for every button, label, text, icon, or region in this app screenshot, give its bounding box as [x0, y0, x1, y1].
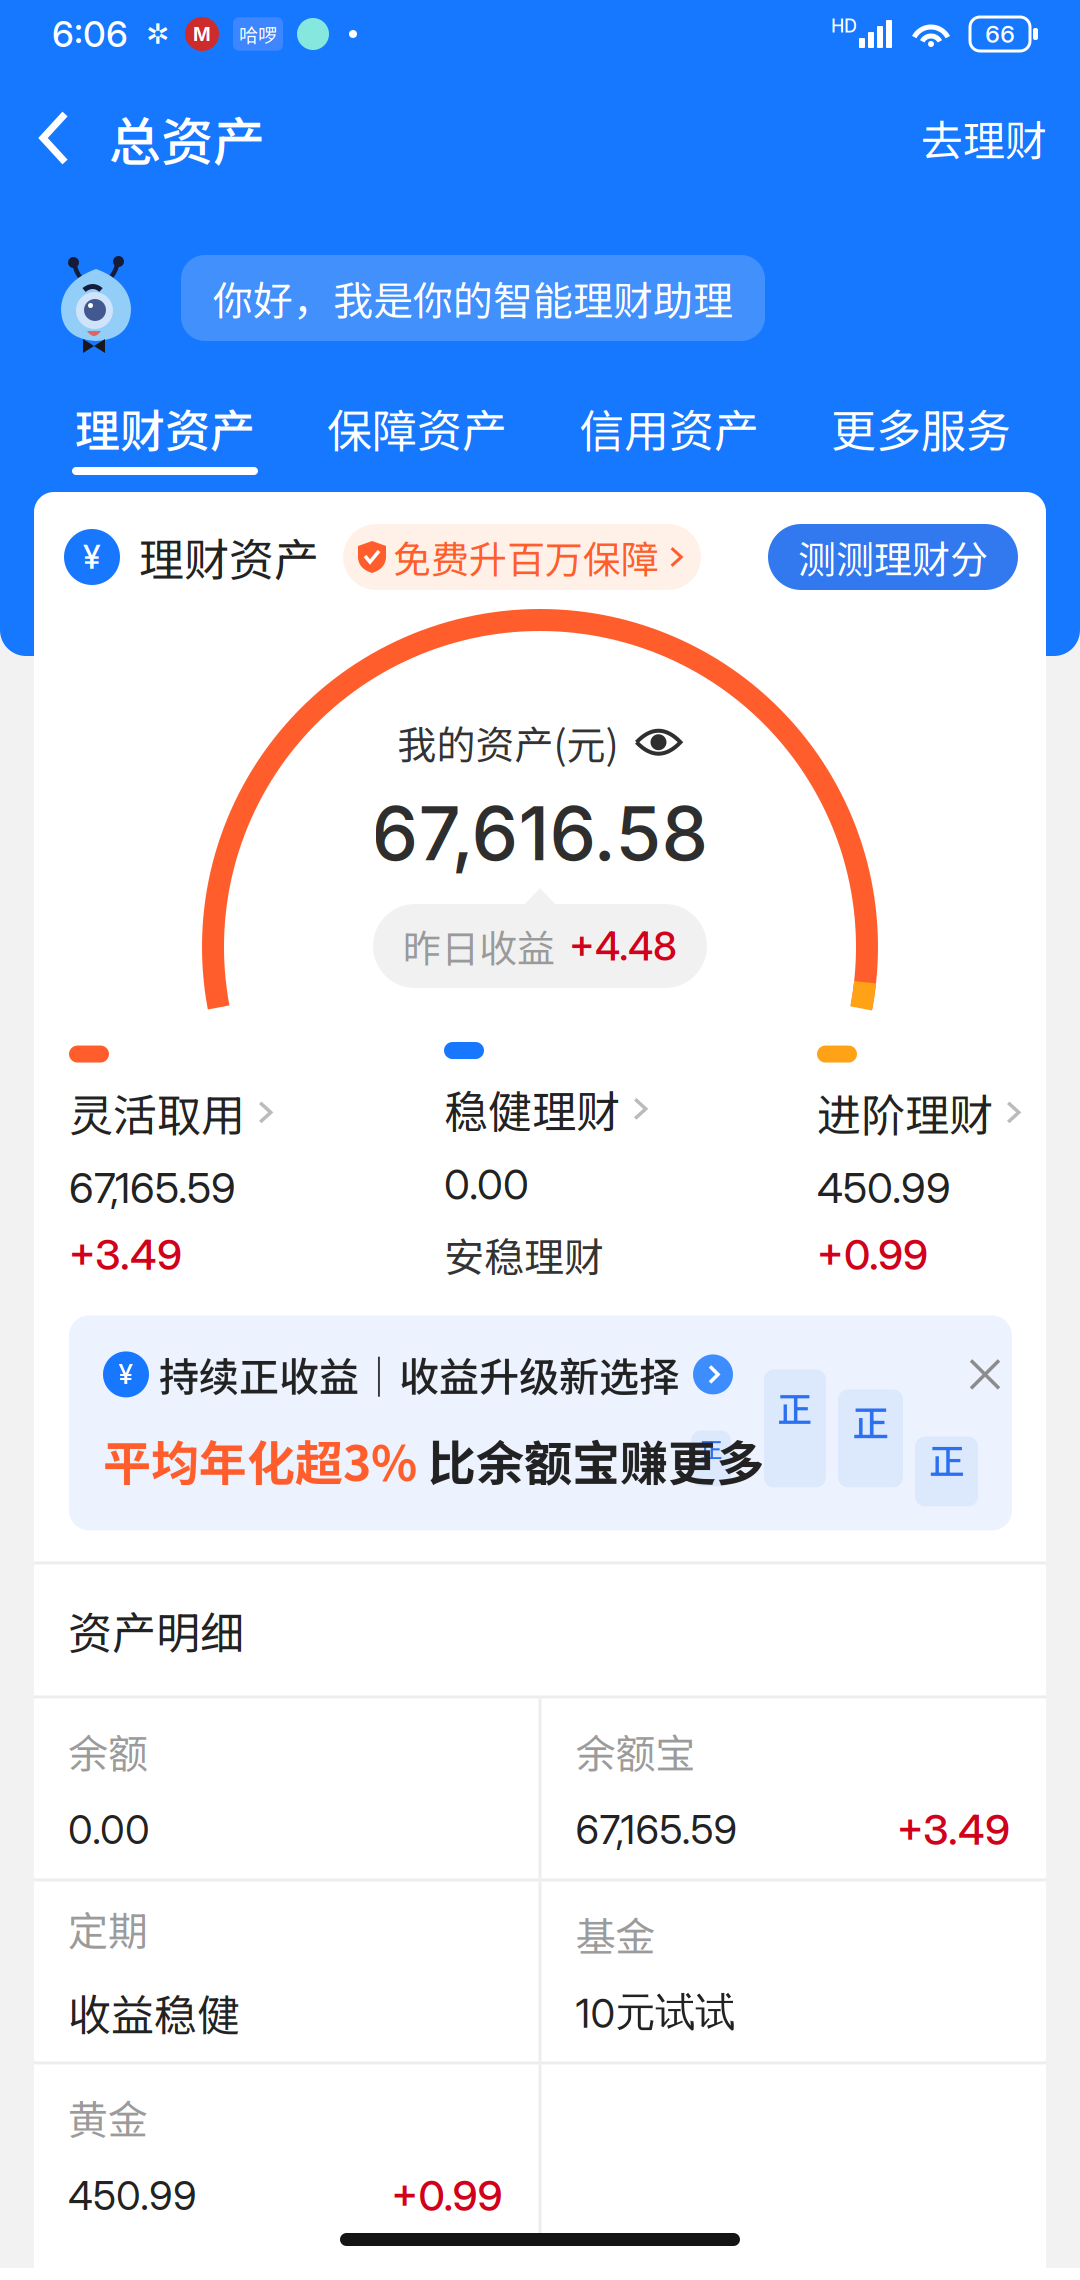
staticText: 持续正收益｜收益升级新选择	[159, 1345, 679, 1403]
staticText: 正	[852, 1394, 888, 1447]
button[interactable]: 余额	[34, 1698, 538, 1878]
staticText: 67,165.59	[69, 1162, 236, 1213]
staticText: 450.99	[817, 1162, 951, 1213]
staticText: 余额宝	[575, 1722, 695, 1780]
staticText: 定期	[68, 1899, 148, 1957]
button[interactable]: 黄金	[34, 2064, 538, 2244]
staticText: 总资产	[109, 100, 265, 176]
staticText: 昨日收益	[403, 918, 555, 973]
staticText: 余额	[68, 1722, 148, 1780]
staticText: 我的资产(元)	[397, 714, 618, 770]
button[interactable]: 保障资产	[291, 357, 543, 492]
button[interactable]: 理财资产	[39, 357, 291, 492]
button[interactable]: 免费升百万保障	[343, 524, 701, 590]
staticText: 66	[985, 19, 1015, 48]
button[interactable]: 稳健理财	[444, 1042, 817, 1283]
staticText: 正	[929, 1433, 964, 1484]
staticText: 理财资产	[139, 524, 319, 590]
staticText: +0.99	[817, 1229, 928, 1280]
staticText: 你好，我是你的智能理财助理	[213, 269, 733, 327]
button[interactable]: 进阶理财	[817, 1046, 1046, 1280]
staticText: 67,165.59	[575, 1805, 737, 1854]
staticText: 10元试试	[575, 1987, 735, 2038]
staticText: 稳健理财	[444, 1077, 620, 1141]
staticText: 哈啰	[239, 20, 277, 48]
staticText: 比余额宝赚更多	[417, 1425, 764, 1495]
button[interactable]: 灵活取用	[69, 1046, 444, 1280]
button[interactable]: 更多服务	[795, 357, 1047, 492]
staticText: 灵活取用	[69, 1081, 245, 1144]
staticText: +0.99	[391, 2170, 502, 2221]
staticText: 进阶理财	[817, 1081, 993, 1144]
staticText: +3.49	[897, 1804, 1010, 1855]
button[interactable]: 正	[34, 1283, 1046, 1561]
button[interactable]: 智能理财助理	[53, 196, 139, 357]
staticText: 0.00	[444, 1159, 529, 1209]
staticText: 信用资产	[579, 395, 759, 461]
staticText: 450.99	[68, 2171, 197, 2220]
staticText: ¥	[118, 1358, 133, 1391]
staticText: 安稳理财	[444, 1225, 604, 1283]
button[interactable]: 基金	[541, 1881, 1046, 2061]
button[interactable]: 去理财	[888, 88, 1080, 188]
staticText: 收益稳健	[68, 1981, 240, 2044]
button[interactable]: 测测理财分	[768, 524, 1018, 590]
staticText: 正	[777, 1382, 812, 1432]
staticText: +3.49	[69, 1229, 182, 1280]
staticText: 免费升百万保障	[393, 529, 659, 584]
staticText: 平均年化超3%	[103, 1425, 417, 1495]
staticText: 理财资产	[75, 395, 255, 461]
staticText: 67,616.58	[371, 788, 708, 878]
staticText: 资产明细	[68, 1598, 244, 1662]
staticText: 正	[700, 1432, 722, 1465]
button[interactable]: 余额宝	[541, 1698, 1046, 1878]
staticText: +4.48	[569, 922, 677, 970]
staticText: M	[193, 22, 211, 45]
button[interactable]: 你好，我是你的智能理财助理	[181, 255, 765, 341]
staticText: 基金	[575, 1905, 655, 1963]
staticText: 测测理财分	[798, 529, 988, 584]
staticText: ✲	[146, 18, 169, 50]
button[interactable]: 返回	[0, 92, 91, 184]
button[interactable]: 信用资产	[543, 357, 795, 492]
staticText: 6:06	[52, 12, 128, 56]
button[interactable]: 定期	[34, 1881, 538, 2061]
staticText: 0.00	[68, 1805, 150, 1854]
staticText: 黄金	[68, 2088, 148, 2146]
staticText: 更多服务	[831, 395, 1011, 461]
staticText: 去理财	[921, 108, 1047, 168]
staticText: 保障资产	[327, 395, 507, 461]
button[interactable]	[541, 2064, 1046, 2244]
staticText: HD	[831, 15, 857, 37]
staticText: ¥	[83, 537, 101, 577]
